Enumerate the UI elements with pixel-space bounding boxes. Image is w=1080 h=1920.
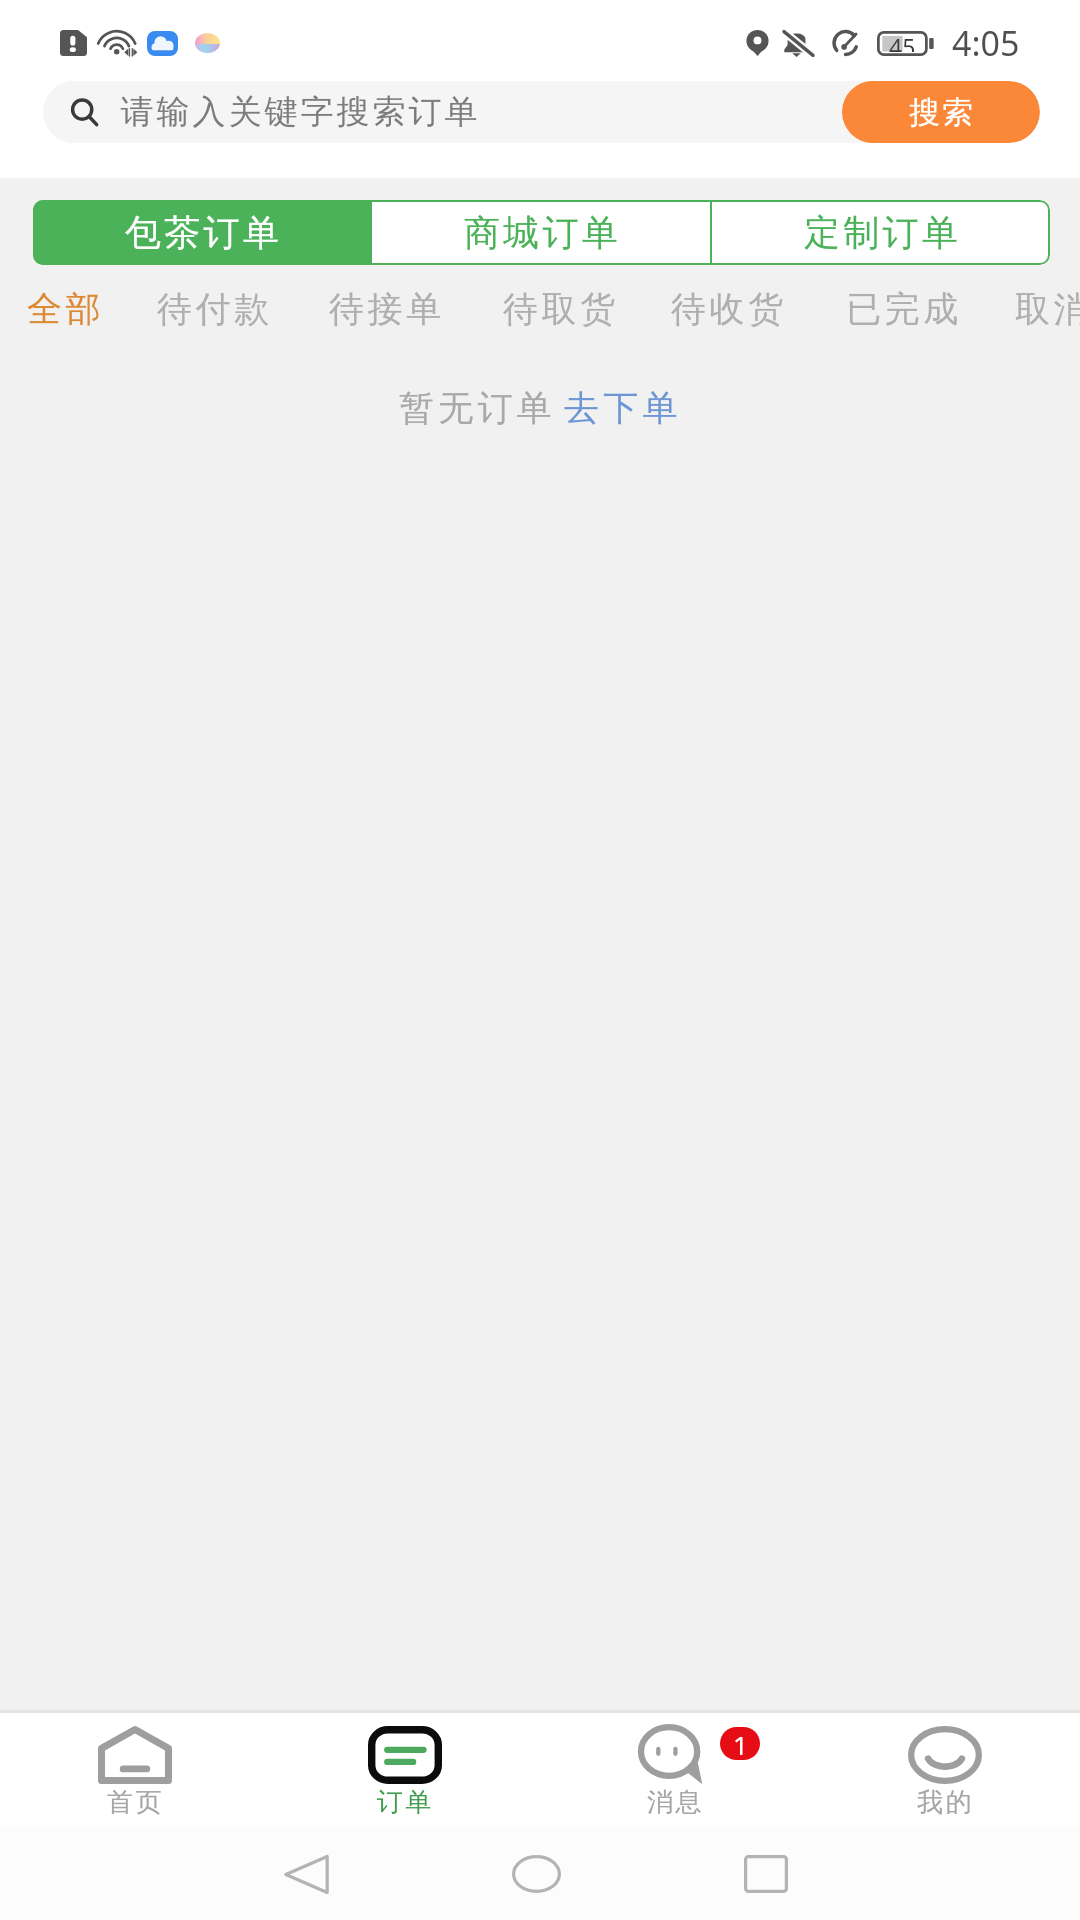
button[interactable]: 订单 — [270, 1713, 540, 1827]
staticText: 订单 — [377, 1786, 434, 1819]
button[interactable]: 取消 — [1015, 277, 1080, 341]
staticText: 4:05 — [952, 20, 1020, 66]
button[interactable]: 请输入关键字搜索订单 — [43, 81, 1040, 143]
button[interactable]: 待收货 — [671, 277, 787, 341]
button[interactable]: 首页 — [0, 1713, 270, 1827]
button[interactable]: 待取货 — [503, 277, 619, 341]
button[interactable]: Home — [496, 1834, 576, 1914]
staticText: 待收货 — [671, 287, 787, 331]
button[interactable]: 待付款 — [157, 277, 273, 341]
button[interactable]: 包茶订单 — [33, 200, 370, 265]
button[interactable]: 我的 — [810, 1713, 1080, 1827]
staticText: 搜索 — [908, 93, 974, 132]
staticText: 商城订单 — [464, 210, 622, 255]
staticText: 全部 — [27, 287, 105, 331]
staticText: 待接单 — [329, 287, 445, 331]
button[interactable]: Back — [266, 1834, 346, 1914]
button[interactable]: 消息 — [540, 1713, 810, 1827]
button[interactable]: Recents — [726, 1834, 806, 1914]
staticText: 首页 — [107, 1786, 164, 1819]
staticText: 定制订单 — [804, 210, 962, 255]
staticText: 消息 — [647, 1786, 704, 1819]
staticText: 待付款 — [157, 287, 273, 331]
staticText: 暂无订单 — [399, 386, 556, 430]
staticText: 45 — [889, 31, 916, 52]
staticText: 取消 — [1015, 287, 1080, 331]
button[interactable]: 已完成 — [846, 277, 962, 341]
staticText: 1 — [733, 1727, 748, 1760]
staticText: 已完成 — [846, 287, 962, 331]
button[interactable]: 商城订单 — [372, 200, 710, 265]
button[interactable]: 待接单 — [329, 277, 445, 341]
button[interactable]: 全部 — [27, 277, 105, 341]
staticText: 我的 — [917, 1786, 974, 1819]
staticText: 包茶订单 — [125, 210, 283, 255]
button[interactable]: 搜索 — [842, 81, 1040, 143]
staticText: 请输入关键字搜索订单 — [119, 91, 479, 133]
staticText: 去下单 — [564, 386, 682, 430]
button[interactable]: 去下单 — [564, 386, 682, 430]
staticText: 待取货 — [503, 287, 619, 331]
button[interactable]: 定制订单 — [712, 200, 1050, 265]
